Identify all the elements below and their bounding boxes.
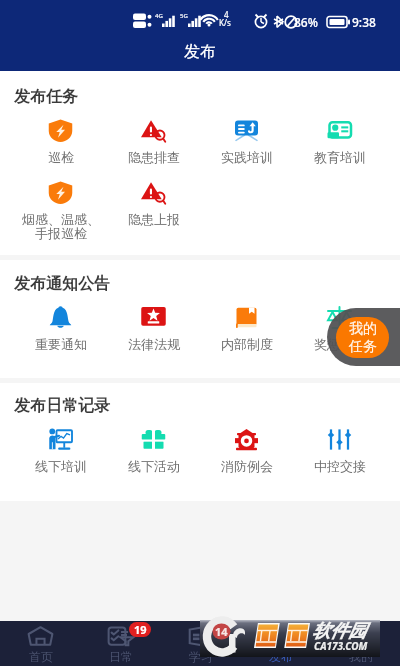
button[interactable]: 我的 <box>320 621 400 666</box>
staticText: 中控交接 <box>314 458 366 474</box>
staticText: 消防例会 <box>221 458 273 474</box>
staticText: 14 <box>214 622 227 637</box>
button[interactable]: 法律法规 <box>107 306 200 352</box>
staticText: 重要通知 <box>35 336 87 352</box>
staticText: 线下活动 <box>128 458 180 474</box>
staticText: K/s <box>219 17 231 28</box>
staticText: 发布日常记录 <box>14 396 110 416</box>
staticText: 隐患排查 <box>128 149 180 165</box>
button[interactable]: 奖惩制度 <box>293 306 386 352</box>
staticText: 发布任务 <box>14 87 78 107</box>
staticText: 5G <box>180 12 188 20</box>
staticText: 学习 <box>189 649 213 664</box>
button[interactable]: 学习 <box>160 621 240 666</box>
button[interactable]: 隐患排查 <box>107 119 200 165</box>
staticText: 4 <box>224 9 229 20</box>
button[interactable]: 实践培训 <box>200 119 293 165</box>
staticText: 线下培训 <box>35 458 87 474</box>
button[interactable]: 教育培训 <box>293 119 386 165</box>
staticText: 教育培训 <box>314 149 366 165</box>
button[interactable]: 首页 <box>0 621 80 666</box>
staticText: 首页 <box>29 649 53 664</box>
staticText: 发布 <box>184 42 216 62</box>
staticText: 法律法规 <box>128 336 180 352</box>
staticText: 19 <box>134 622 147 637</box>
staticText: 我的 任务 <box>349 320 377 356</box>
staticText: 奖惩制度 <box>314 336 366 352</box>
button[interactable]: 消防例会 <box>200 428 293 474</box>
button[interactable]: 我的 任务 <box>327 308 400 366</box>
staticText: 86% <box>294 14 318 30</box>
staticText: 4G <box>155 12 163 20</box>
button[interactable]: 线下活动 <box>107 428 200 474</box>
staticText: 日常 <box>109 649 133 664</box>
staticText: 发布 <box>269 649 293 664</box>
button[interactable]: 线下培训 <box>14 428 107 474</box>
button[interactable]: 发布 <box>240 621 320 666</box>
staticText: 发布通知公告 <box>14 274 110 294</box>
staticText: 软件园 <box>312 620 366 643</box>
staticText: 巡检 <box>48 149 74 165</box>
button[interactable]: 巡检 <box>14 119 107 165</box>
button[interactable]: 隐患上报 <box>107 181 200 227</box>
staticText: 烟感、温感、 手报巡检 <box>22 211 100 242</box>
button[interactable]: 烟感、温感、 手报巡检 <box>14 181 107 242</box>
staticText: 隐患上报 <box>128 211 180 227</box>
staticText: 14 <box>215 624 228 639</box>
button[interactable]: 内部制度 <box>200 306 293 352</box>
staticText: 实践培训 <box>221 149 273 165</box>
staticText: 我的 <box>349 649 373 664</box>
button[interactable]: 重要通知 <box>14 306 107 352</box>
button[interactable]: 中控交接 <box>293 428 386 474</box>
staticText: CA173.COM <box>314 639 368 653</box>
staticText: 内部制度 <box>221 336 273 352</box>
staticText: 9:38 <box>352 14 376 30</box>
button[interactable]: 日常 <box>80 621 160 666</box>
